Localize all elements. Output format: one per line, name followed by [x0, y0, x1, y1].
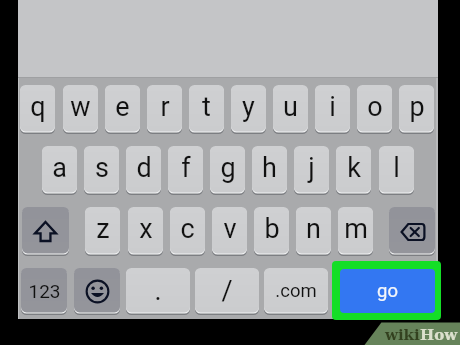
staticText: f	[181, 152, 191, 184]
staticText: y	[242, 91, 255, 123]
button[interactable]: r	[147, 85, 182, 134]
staticText: o	[367, 91, 383, 123]
staticText: a	[52, 152, 67, 184]
button[interactable]: u	[273, 85, 308, 134]
button[interactable]: k	[336, 146, 371, 195]
button[interactable]: s	[84, 146, 119, 195]
button[interactable]: y	[231, 85, 266, 134]
staticText: x	[139, 213, 153, 245]
staticText: u	[283, 91, 298, 123]
staticText: k	[347, 152, 361, 184]
staticText: /	[221, 275, 233, 307]
button[interactable]: Emoji	[74, 268, 120, 315]
button[interactable]: n	[296, 207, 331, 256]
button[interactable]: q	[20, 85, 55, 134]
button[interactable]: Shift	[22, 207, 69, 256]
button[interactable]: t	[189, 85, 224, 134]
staticText: n	[306, 213, 321, 245]
button[interactable]: d	[126, 146, 161, 195]
staticText: m	[344, 213, 368, 245]
button[interactable]: w	[63, 85, 98, 134]
button[interactable]: v	[212, 207, 247, 256]
button[interactable]: p	[399, 85, 434, 134]
staticText: How	[420, 326, 458, 344]
staticText: h	[262, 152, 277, 184]
button[interactable]: h	[252, 146, 287, 195]
button[interactable]: .	[126, 268, 190, 315]
staticText: s	[95, 152, 109, 184]
staticText: .com	[275, 280, 317, 302]
button[interactable]: o	[357, 85, 392, 134]
staticText: p	[409, 91, 425, 123]
staticText: z	[96, 213, 110, 245]
staticText: t	[202, 91, 211, 123]
staticText: .	[154, 275, 162, 307]
button[interactable]: Backspace	[389, 207, 435, 256]
button[interactable]: 123	[21, 268, 67, 315]
staticText: go	[377, 280, 398, 302]
staticText: wiki	[385, 326, 420, 344]
staticText: 123	[28, 280, 61, 302]
staticText: j	[308, 152, 315, 184]
button[interactable]: z	[85, 207, 120, 256]
button[interactable]: j	[294, 146, 329, 195]
staticText: d	[136, 152, 152, 184]
button[interactable]: m	[338, 207, 373, 256]
staticText: l	[393, 152, 400, 184]
staticText: w	[70, 91, 91, 123]
staticText: r	[160, 91, 170, 123]
button[interactable]: i	[315, 85, 350, 134]
staticText: g	[220, 152, 236, 184]
button[interactable]: l	[379, 146, 414, 195]
button[interactable]: x	[128, 207, 163, 256]
staticText: b	[264, 213, 280, 245]
staticText: e	[115, 91, 130, 123]
button[interactable]: e	[105, 85, 140, 134]
button[interactable]: f	[168, 146, 203, 195]
button[interactable]: a	[42, 146, 77, 195]
staticText: q	[30, 91, 46, 123]
staticText: c	[180, 213, 195, 245]
button[interactable]: /	[195, 268, 259, 315]
button[interactable]: .com	[264, 268, 328, 315]
button[interactable]: g	[210, 146, 245, 195]
button[interactable]: b	[254, 207, 289, 256]
staticText: i	[329, 91, 336, 123]
staticText: v	[223, 213, 237, 245]
button[interactable]: go	[340, 269, 435, 313]
button[interactable]: c	[170, 207, 205, 256]
